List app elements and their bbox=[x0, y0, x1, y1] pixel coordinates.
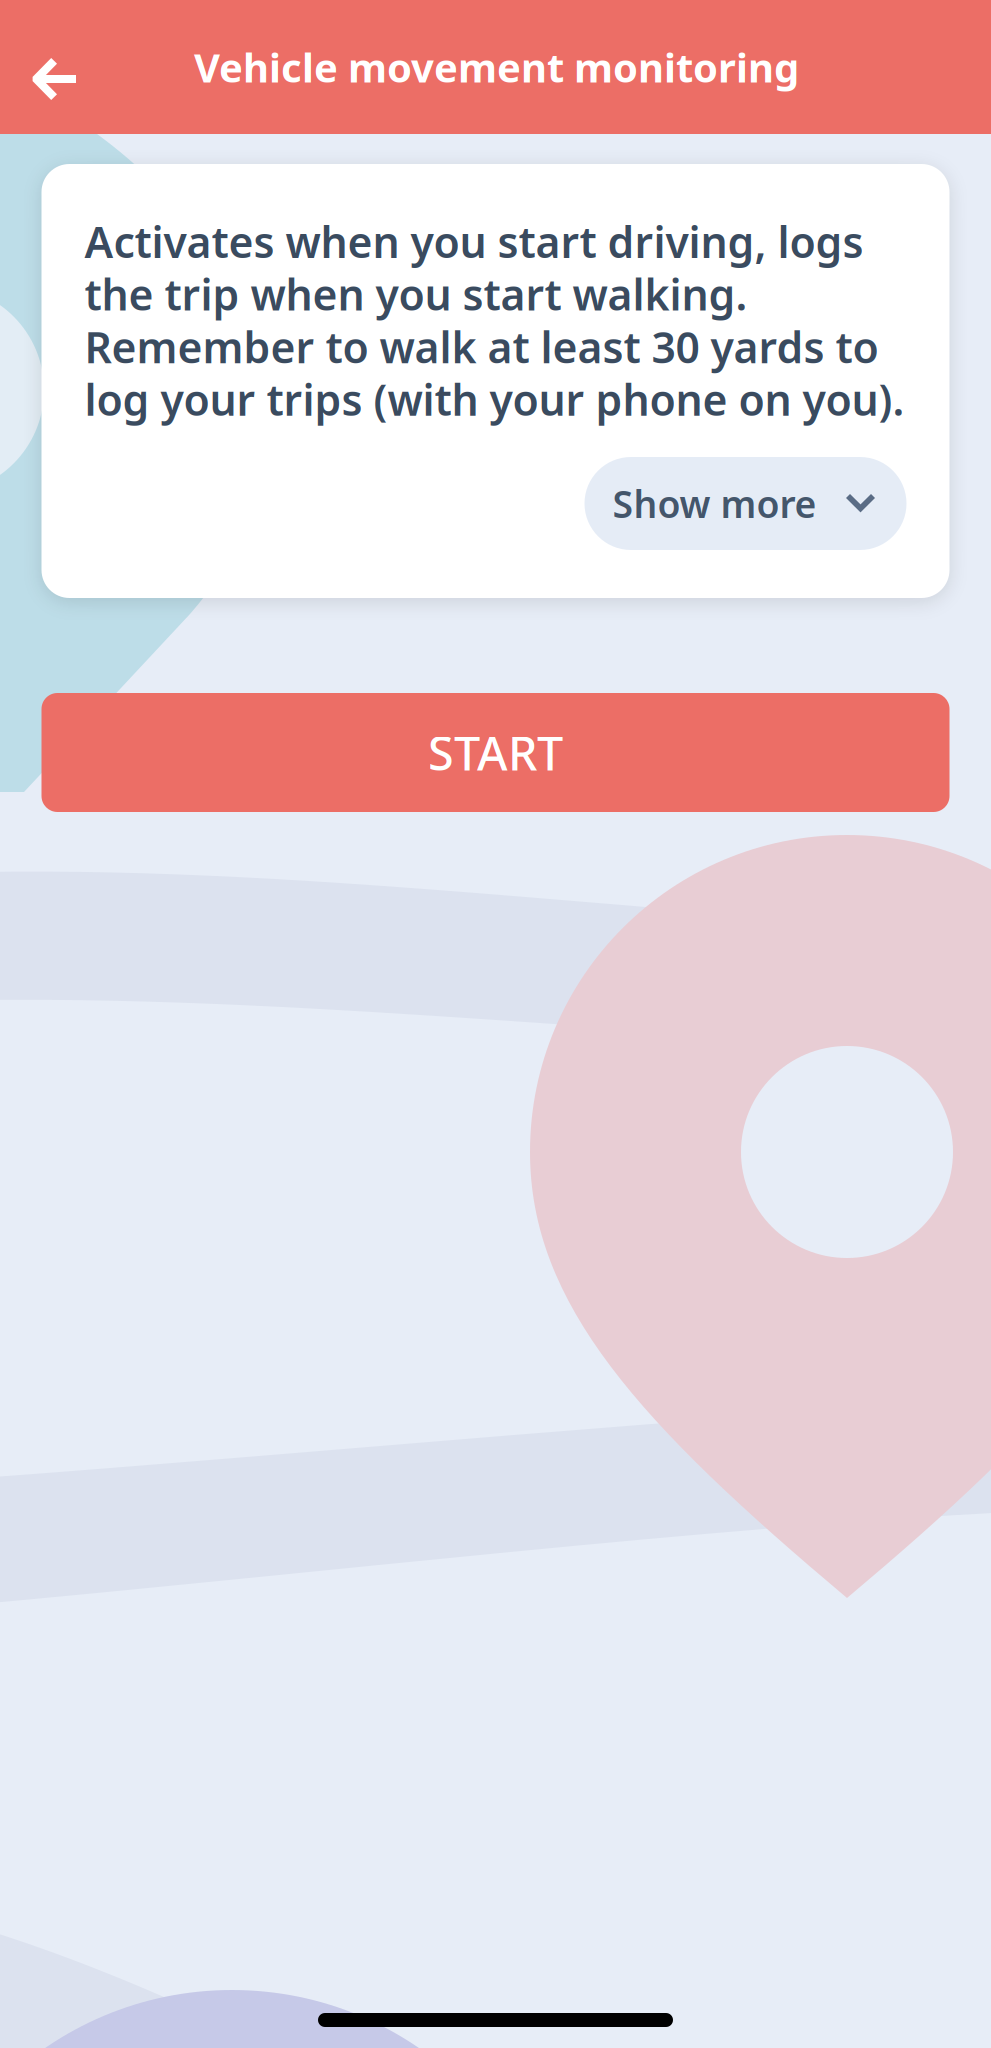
button[interactable]: START bbox=[41, 693, 949, 812]
button[interactable]: Show more bbox=[584, 457, 906, 550]
button[interactable]: Back bbox=[0, 0, 108, 134]
staticText: START bbox=[428, 721, 563, 783]
staticText: Vehicle movement monitoring bbox=[194, 40, 799, 93]
staticText: Activates when you start driving, logs t… bbox=[84, 213, 904, 428]
staticText: Show more bbox=[612, 479, 816, 528]
